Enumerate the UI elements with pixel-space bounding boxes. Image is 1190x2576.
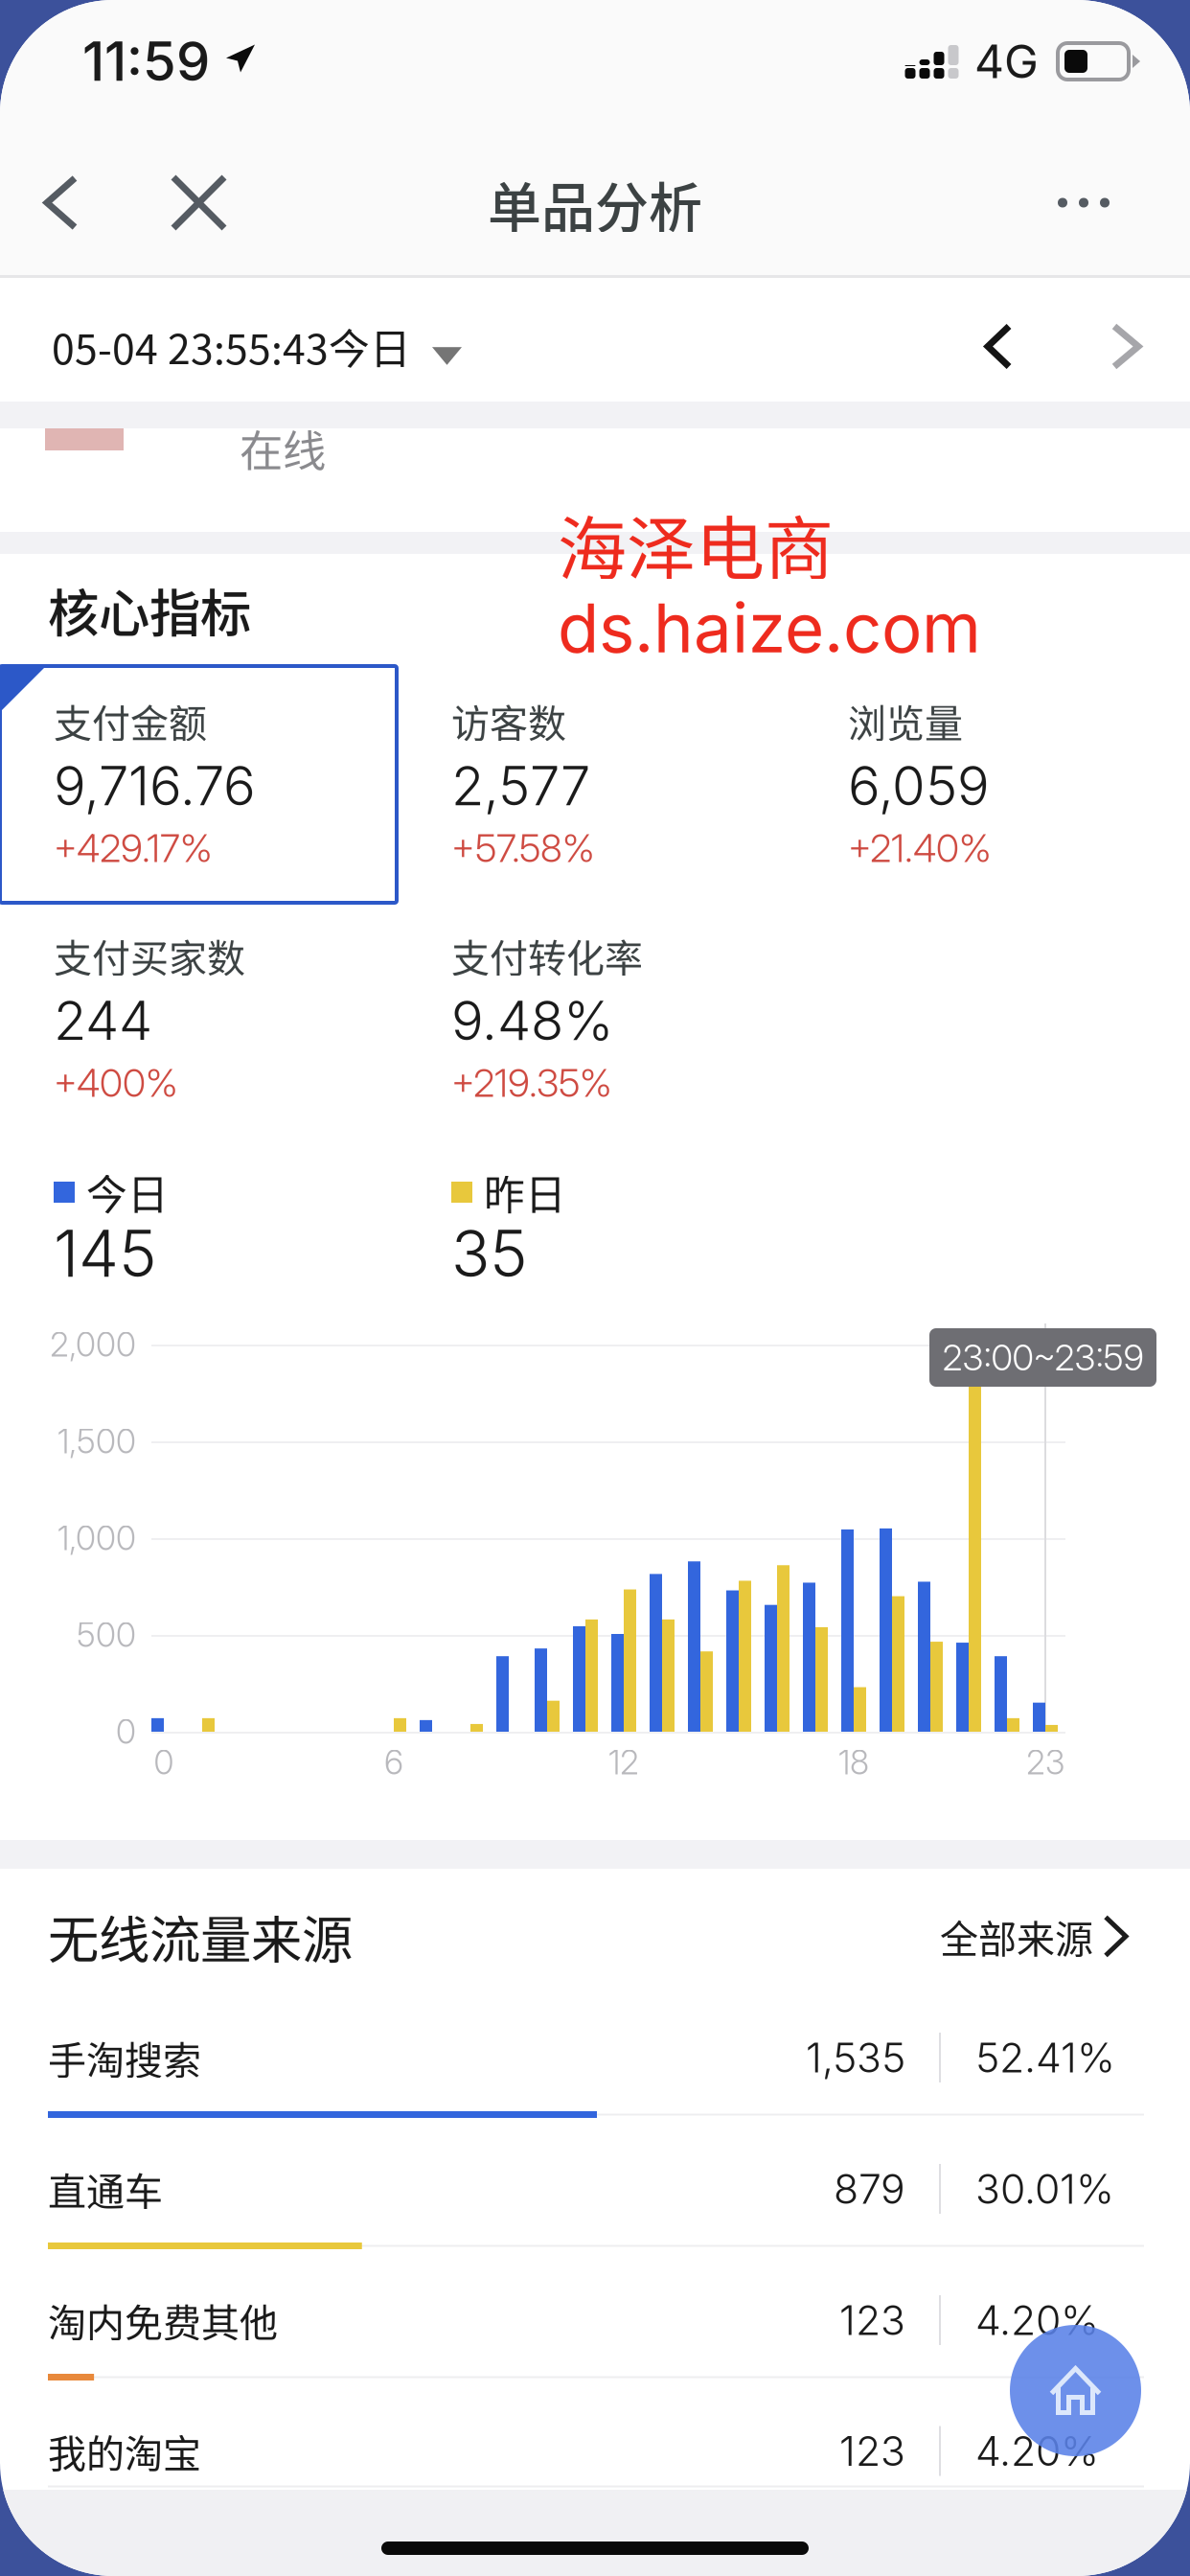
staticText: 核心指标 bbox=[48, 573, 251, 647]
staticText: 18 bbox=[838, 1742, 869, 1782]
staticText: 9.48% bbox=[451, 988, 613, 1053]
button[interactable]: 直通车 bbox=[48, 2118, 1144, 2249]
staticText: 今日 bbox=[86, 1163, 169, 1222]
button[interactable]: 我的淘宝 bbox=[48, 2380, 1144, 2490]
staticText: 500 bbox=[77, 1615, 136, 1655]
staticText: 0 bbox=[116, 1712, 136, 1752]
staticText: 访客数 bbox=[451, 693, 566, 748]
staticText: 支付买家数 bbox=[54, 928, 245, 983]
button[interactable]: 手淘搜索 bbox=[48, 1987, 1144, 2118]
staticText: 4G bbox=[974, 34, 1039, 89]
staticText: 4.20% bbox=[975, 2295, 1099, 2345]
button[interactable]: Close bbox=[145, 145, 279, 260]
staticText: 0 bbox=[154, 1742, 174, 1782]
staticText: 123 bbox=[839, 2426, 905, 2476]
staticText: 879 bbox=[834, 2164, 905, 2214]
button[interactable]: 淘内免费其他 bbox=[48, 2249, 1144, 2380]
staticText: 35 bbox=[451, 1215, 528, 1292]
staticText: 全部来源 bbox=[940, 1909, 1093, 1964]
staticText: 145 bbox=[54, 1215, 157, 1292]
staticText: 2,000 bbox=[50, 1324, 136, 1365]
staticText: 123 bbox=[839, 2295, 905, 2345]
staticText: 昨日 bbox=[484, 1163, 566, 1222]
staticText: 23 bbox=[1026, 1742, 1064, 1782]
staticText: 11:59 bbox=[82, 29, 210, 94]
staticText: 海泽电商 bbox=[558, 493, 834, 593]
staticText: 我的淘宝 bbox=[48, 2423, 201, 2479]
staticText: 直通车 bbox=[48, 2161, 163, 2217]
staticText: 52.41% bbox=[975, 2033, 1115, 2082]
staticText: 1,000 bbox=[57, 1518, 136, 1558]
staticText: +57.58% bbox=[451, 825, 595, 871]
staticText: 23:00~23:59 bbox=[942, 1336, 1144, 1379]
button[interactable]: 全部来源 bbox=[940, 1889, 1144, 1966]
staticText: 在线 bbox=[240, 417, 326, 480]
staticText: 手淘搜索 bbox=[48, 2030, 201, 2085]
button[interactable]: 05-04 23:55:43今日 bbox=[0, 278, 1190, 402]
staticText: 淘内免费其他 bbox=[48, 2292, 278, 2348]
staticText: 05-04 23:55:43今日 bbox=[52, 317, 411, 376]
staticText: 6 bbox=[384, 1742, 403, 1782]
staticText: 6,059 bbox=[848, 753, 990, 818]
staticText: 浏览量 bbox=[848, 693, 963, 748]
staticText: 12 bbox=[608, 1742, 639, 1782]
staticText: 2,577 bbox=[451, 753, 590, 818]
staticText: 244 bbox=[54, 988, 152, 1053]
staticText: +400% bbox=[54, 1060, 178, 1106]
staticText: 9,716.76 bbox=[54, 753, 256, 818]
staticText: 4.20% bbox=[975, 2426, 1099, 2476]
staticText: 无线流量来源 bbox=[48, 1899, 353, 1973]
button[interactable]: More bbox=[985, 145, 1110, 260]
staticText: +219.35% bbox=[451, 1060, 612, 1106]
staticText: 支付转化率 bbox=[451, 928, 643, 983]
staticText: +429.17% bbox=[54, 825, 213, 871]
staticText: 30.01% bbox=[975, 2164, 1114, 2214]
staticText: +21.40% bbox=[848, 825, 992, 871]
button[interactable]: Back bbox=[0, 145, 145, 260]
staticText: 1,500 bbox=[57, 1421, 136, 1461]
staticText: 单品分析 bbox=[488, 165, 702, 243]
staticText: 1,535 bbox=[806, 2033, 905, 2082]
button[interactable]: Home bbox=[1010, 2325, 1141, 2456]
staticText: ds.haize.com bbox=[558, 587, 981, 669]
staticText: 支付金额 bbox=[54, 693, 207, 748]
